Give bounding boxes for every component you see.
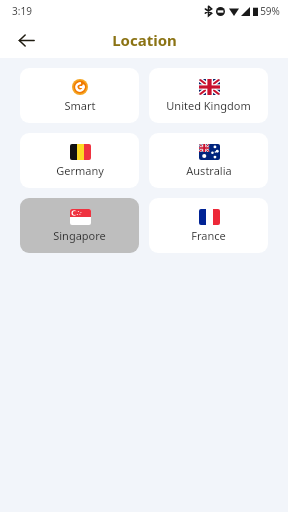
staticText: Australia [186, 163, 232, 178]
staticText: 3:19 [12, 4, 32, 18]
staticText: Smart [64, 98, 96, 113]
button[interactable]: United Kingdom [149, 68, 268, 123]
button[interactable]: Singapore [20, 198, 139, 253]
staticText: Germany [56, 163, 104, 178]
staticText: 59% [260, 4, 280, 18]
staticText: United Kingdom [166, 98, 251, 113]
staticText: Location [112, 30, 177, 50]
staticText: France [191, 228, 226, 243]
button[interactable]: Back [10, 24, 42, 56]
button[interactable]: France [149, 198, 268, 253]
staticText: Singapore [53, 228, 106, 243]
button[interactable]: Smart [20, 68, 139, 123]
button[interactable]: Germany [20, 133, 139, 188]
button[interactable]: Australia [149, 133, 268, 188]
